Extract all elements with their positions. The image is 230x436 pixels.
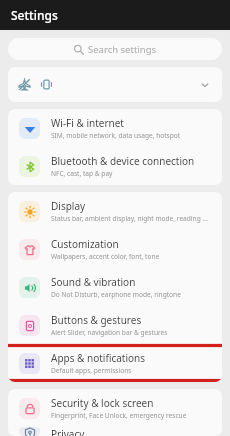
staticText: Buttons & gestures (51, 313, 142, 327)
staticText: Sound & vibration (51, 275, 136, 289)
staticText: Wi-Fi & internet (51, 116, 124, 130)
staticText: NFC, cast, tap & pay (51, 169, 113, 178)
staticText: Apps & notifications (51, 351, 146, 365)
button[interactable]: Privacy (8, 427, 222, 436)
staticText: SIM, mobile network, data usage, hotspot (51, 131, 181, 140)
staticText: Security & lock screen (51, 396, 154, 410)
button[interactable]: Buttons & gestures (8, 306, 222, 344)
button[interactable]: Sound & vibration (8, 268, 222, 306)
button[interactable]: Apps & notifications (8, 344, 222, 382)
button[interactable]: Airplane mode (8, 67, 222, 102)
other: Airplane mode (18, 78, 31, 91)
staticText: Status bar, ambient display, night mode,… (51, 214, 212, 223)
staticText: Search settings (88, 43, 157, 56)
staticText: Fingerprint, Face Unlock, emergency resc… (51, 411, 187, 420)
other: Vibration (40, 78, 53, 91)
staticText: Privacy (51, 427, 85, 436)
staticText: Default apps, permissions (51, 366, 132, 375)
staticText: Bluetooth & device connection (51, 154, 195, 168)
button[interactable]: Customization (8, 230, 222, 268)
button[interactable]: Bluetooth & device connection (8, 147, 222, 185)
staticText: Alert Slider, navigation bar & gestures (51, 328, 168, 337)
staticText: Wallpapers, accent color, font, tone (51, 252, 160, 261)
button[interactable]: Security & lock screen (8, 389, 222, 427)
staticText: Customization (51, 237, 119, 251)
staticText: Settings (11, 7, 58, 23)
button[interactable]: Search settings (8, 38, 222, 60)
staticText: Do Not Disturb, earphone mode, ringtone (51, 290, 181, 299)
button[interactable]: Expand (198, 78, 212, 92)
staticText: Display (51, 199, 86, 213)
button[interactable]: Wi-Fi & internet (8, 109, 222, 147)
button[interactable]: Display (8, 192, 222, 230)
